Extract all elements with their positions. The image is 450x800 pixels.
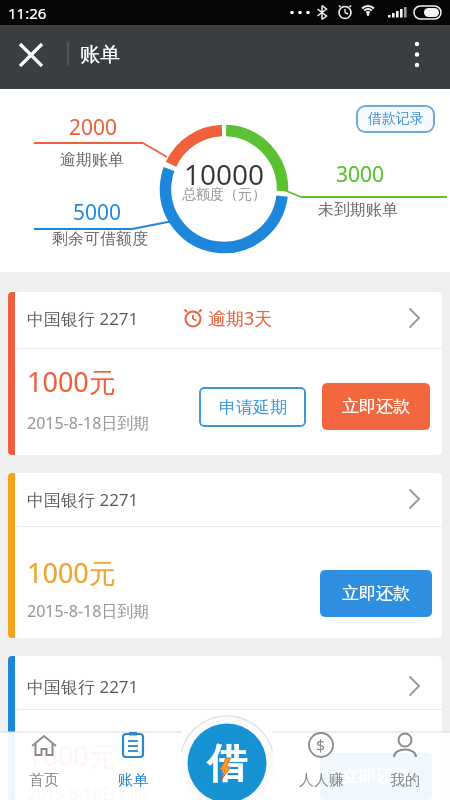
button[interactable]: 立即还款 <box>320 753 432 800</box>
staticText: 2015-8-18日到期 <box>27 783 150 800</box>
staticText: 借款记录 <box>368 110 424 128</box>
staticText: 1000元 <box>27 554 116 591</box>
staticText: 首页 <box>29 771 59 790</box>
staticText: 我的 <box>390 771 420 790</box>
button[interactable] <box>400 671 430 701</box>
staticText: 逾期账单 <box>60 150 124 170</box>
staticText: 2015-8-18日到期 <box>27 412 150 434</box>
staticText: 1000元 <box>27 363 116 400</box>
staticText: 账单 <box>80 42 120 67</box>
button[interactable] <box>370 732 440 800</box>
button[interactable] <box>400 33 436 77</box>
button[interactable]: 借 <box>187 723 267 800</box>
staticText: 10000 <box>184 155 265 187</box>
staticText: 中国银行 2271 <box>27 675 139 698</box>
staticText: 中国银行 2271 <box>27 307 139 330</box>
staticText: 11:26 <box>8 3 47 23</box>
button[interactable] <box>400 484 430 514</box>
staticText: 立即还款 <box>342 583 410 604</box>
button[interactable] <box>12 36 50 74</box>
button[interactable] <box>286 732 356 800</box>
staticText: 逾期3天 <box>208 306 273 331</box>
staticText: 2015-8-18日到期 <box>27 600 150 622</box>
staticText: 账单 <box>118 771 148 790</box>
staticText: 申请延期 <box>219 397 287 418</box>
staticText: 1000元 <box>27 737 116 774</box>
staticText: $ <box>316 734 326 756</box>
button[interactable]: 立即还款 <box>322 383 430 430</box>
staticText: 立即还款 <box>342 766 410 787</box>
button[interactable] <box>98 732 168 800</box>
staticText: 2000 <box>69 113 118 139</box>
staticText: 人人赚 <box>299 771 344 790</box>
staticText: 借 <box>207 738 247 788</box>
button[interactable] <box>9 732 79 800</box>
staticText: 3000 <box>336 160 385 186</box>
staticText: 中国银行 2271 <box>27 488 139 511</box>
button[interactable]: 申请延期 <box>199 387 306 427</box>
button[interactable]: 立即还款 <box>320 570 432 617</box>
staticText: 剩余可借额度 <box>52 229 148 249</box>
staticText: 未到期账单 <box>318 200 398 220</box>
staticText: 5000 <box>73 198 122 224</box>
button[interactable]: 借款记录 <box>356 105 435 133</box>
staticText: 立即还款 <box>342 396 410 417</box>
button[interactable] <box>400 303 430 333</box>
staticText: 总额度（元） <box>182 186 266 204</box>
